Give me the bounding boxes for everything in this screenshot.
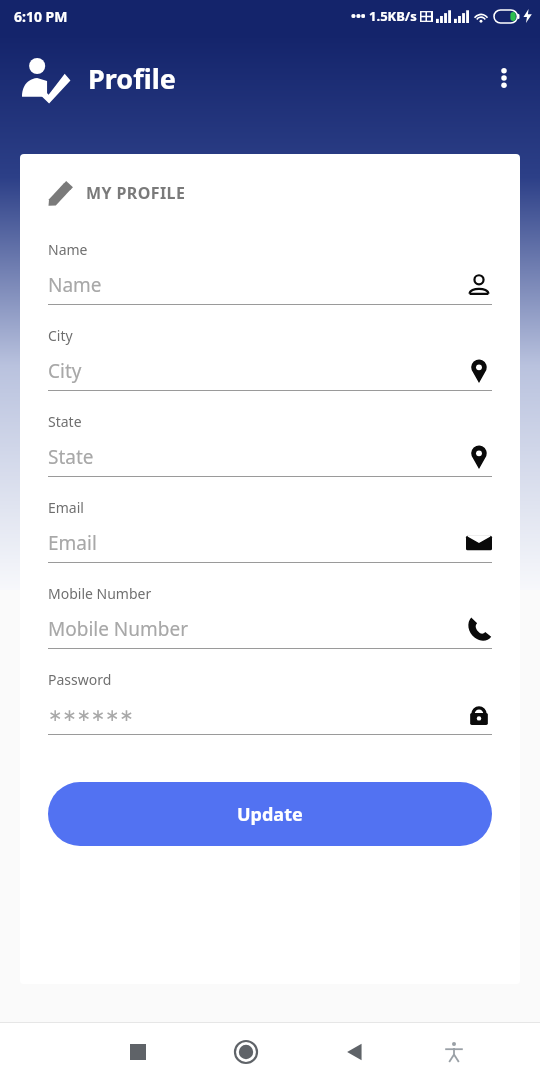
button[interactable]: Accessibility xyxy=(426,1024,482,1080)
staticText: State xyxy=(48,412,82,431)
staticText: Email xyxy=(48,530,97,556)
staticText: City xyxy=(48,326,73,345)
button[interactable]: Back xyxy=(326,1024,382,1080)
button[interactable]: Email xyxy=(48,498,492,584)
button[interactable]: Recents xyxy=(110,1024,166,1080)
staticText: 6:10 PM xyxy=(14,7,68,26)
staticText: City xyxy=(48,358,82,384)
staticText: MY PROFILE xyxy=(86,182,186,204)
button[interactable]: Home xyxy=(218,1024,274,1080)
staticText: ∗∗∗∗∗∗ xyxy=(48,705,134,725)
button[interactable]: Password xyxy=(48,670,492,756)
staticText: State xyxy=(48,444,94,470)
staticText: Mobile Number xyxy=(48,584,152,603)
staticText: Name xyxy=(48,240,88,259)
staticText: Mobile Number xyxy=(48,616,189,642)
button[interactable]: City xyxy=(48,326,492,412)
staticText: Profile xyxy=(88,60,176,97)
staticText: ••• 1.5KB/s xyxy=(351,7,417,25)
button[interactable]: Name xyxy=(48,240,492,326)
button[interactable]: Update xyxy=(48,782,492,846)
button[interactable]: State xyxy=(48,412,492,498)
button[interactable]: More options xyxy=(482,56,526,100)
staticText: Password xyxy=(48,670,112,689)
staticText: Email xyxy=(48,498,84,517)
staticText: Update xyxy=(237,802,303,827)
staticText: Name xyxy=(48,272,102,298)
button[interactable]: Mobile Number xyxy=(48,584,492,670)
